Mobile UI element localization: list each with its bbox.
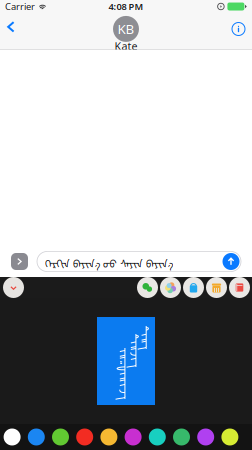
- button[interactable]: Colour 8: [169, 424, 194, 450]
- staticText: KB: [117, 20, 134, 38]
- button[interactable]: App Store: [183, 277, 204, 298]
- staticText: 4:08 PM: [108, 0, 143, 13]
- button[interactable]: Colour 1: [0, 424, 24, 450]
- button[interactable]: Messages: [137, 277, 158, 298]
- staticText: Kate: [114, 39, 137, 53]
- button[interactable]: Details: [224, 14, 252, 49]
- button[interactable]: Colour 5: [97, 424, 121, 450]
- button[interactable]: Colour 2: [24, 424, 48, 450]
- button[interactable]: Send: [221, 251, 241, 271]
- button[interactable]: Colour 4: [73, 424, 97, 450]
- button[interactable]: Colour 3: [48, 424, 73, 450]
- button[interactable]: Colour 7: [145, 424, 169, 450]
- button[interactable]: Back: [0, 15, 24, 48]
- button[interactable]: Colour 6: [121, 424, 145, 450]
- button[interactable]: Colour 9: [194, 424, 218, 450]
- staticText: Carrier: [5, 0, 35, 13]
- button[interactable]: Hide app drawer: [2, 277, 27, 298]
- button[interactable]: Store: [206, 277, 227, 298]
- button[interactable]: Photos: [160, 277, 181, 298]
- staticText: ᠬᠡᠷᠬᠢᠨ ᠪᠠᠶᠢᠨ᠎ᠠ ᠤᠤ ᠰᠠᠶᠢᠨ ᠪᠠᠶᠢᠨ᠎ᠠ: [45, 252, 173, 271]
- button[interactable]: Show apps: [0, 246, 37, 277]
- button[interactable]: Colour 10: [218, 424, 242, 450]
- button[interactable]: Books: [229, 277, 250, 298]
